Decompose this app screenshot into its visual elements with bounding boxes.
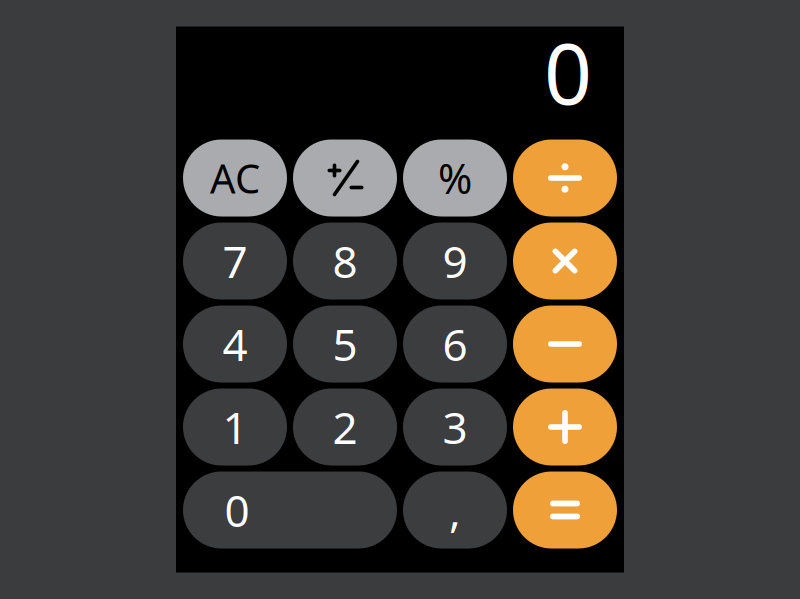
button[interactable]: Multiply	[513, 222, 617, 299]
button[interactable]: 5	[293, 305, 397, 382]
button[interactable]: Divide	[513, 139, 617, 216]
button[interactable]: 9	[403, 222, 507, 299]
button[interactable]: 4	[183, 305, 287, 382]
staticText: 8	[332, 232, 357, 290]
staticText: 1	[222, 398, 247, 456]
button[interactable]: 7	[183, 222, 287, 299]
button[interactable]: 0	[183, 471, 397, 548]
button[interactable]: 1	[183, 388, 287, 465]
staticText: 0	[224, 481, 249, 539]
staticText: 3	[442, 398, 467, 456]
button[interactable]: 2	[293, 388, 397, 465]
button[interactable]: Minus	[513, 305, 617, 382]
staticText: 7	[222, 232, 247, 290]
button[interactable]: Plus minus	[293, 139, 397, 216]
staticText: 0	[544, 16, 592, 128]
button[interactable]: 8	[293, 222, 397, 299]
button[interactable]: AC	[183, 139, 287, 216]
button[interactable]: Equals	[513, 471, 617, 548]
staticText: 5	[332, 315, 357, 373]
staticText: 2	[332, 398, 357, 456]
staticText: AC	[210, 151, 260, 204]
button[interactable]: %	[403, 139, 507, 216]
button[interactable]: 6	[403, 305, 507, 382]
staticText: %	[438, 151, 472, 205]
staticText: 9	[442, 232, 467, 290]
button[interactable]: 3	[403, 388, 507, 465]
button[interactable]: Plus	[513, 388, 617, 465]
staticText: ,	[449, 481, 461, 539]
button[interactable]: ,	[403, 471, 507, 548]
staticText: 4	[222, 315, 247, 373]
staticText: 6	[442, 315, 467, 373]
